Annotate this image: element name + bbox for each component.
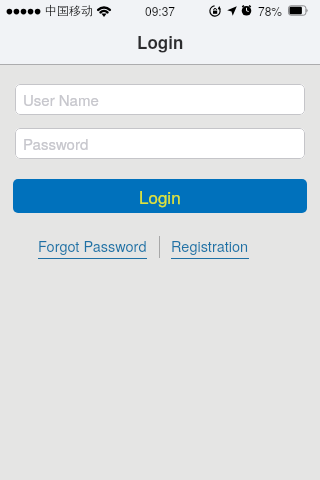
button[interactable]: Password	[15, 128, 305, 159]
staticText: 78%	[258, 2, 283, 19]
staticText: Login	[137, 30, 184, 54]
staticText: Forgot Password	[38, 235, 147, 256]
button[interactable]: Registration	[171, 235, 249, 259]
staticText: Login	[139, 184, 181, 208]
staticText: 中国移动	[45, 3, 93, 18]
button[interactable]: Login	[13, 179, 307, 213]
button[interactable]: Forgot Password	[38, 235, 147, 259]
staticText: Password	[23, 133, 89, 154]
staticText: 09:37	[145, 2, 176, 19]
staticText: User Name	[23, 89, 99, 110]
staticText: Registration	[171, 235, 249, 256]
button[interactable]: User Name	[15, 84, 305, 115]
